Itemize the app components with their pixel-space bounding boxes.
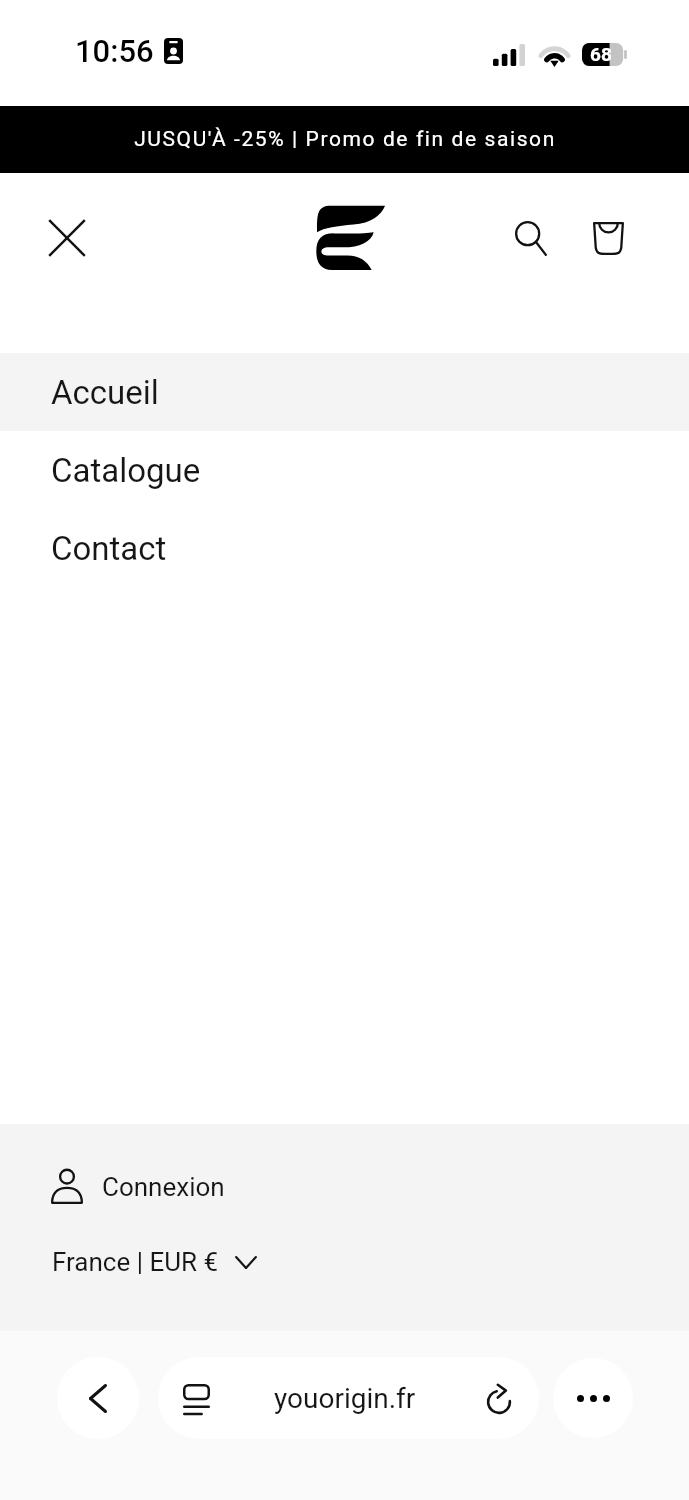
button[interactable]: Catalogue: [0, 431, 689, 509]
staticText: youorigin.fr: [274, 1382, 416, 1415]
staticText: 10:56: [75, 33, 154, 69]
button[interactable]: Page settings: [176, 1379, 216, 1419]
button[interactable]: Page settings: [158, 1357, 539, 1439]
staticText: Contact: [51, 529, 167, 568]
staticText: Catalogue: [51, 451, 201, 490]
button[interactable]: France | EUR €: [44, 1247, 265, 1277]
button[interactable]: Accueil: [0, 353, 689, 431]
staticText: Accueil: [51, 373, 159, 412]
button[interactable]: JUSQU'À -25% | Promo de fin de saison: [0, 106, 689, 173]
staticText: France | EUR €: [52, 1247, 219, 1277]
button[interactable]: Reload: [479, 1378, 519, 1418]
button[interactable]: Close menu: [36, 206, 100, 270]
staticText: 68: [590, 43, 612, 65]
button[interactable]: Back: [57, 1357, 139, 1439]
button[interactable]: Contact: [0, 509, 689, 587]
button[interactable]: More options: [553, 1358, 633, 1438]
button[interactable]: Connexion: [42, 1170, 234, 1204]
staticText: Connexion: [102, 1172, 225, 1202]
button[interactable]: Cart: [576, 206, 640, 270]
staticText: JUSQU'À -25% | Promo de fin de saison: [134, 127, 556, 152]
button[interactable]: Search: [499, 206, 563, 270]
